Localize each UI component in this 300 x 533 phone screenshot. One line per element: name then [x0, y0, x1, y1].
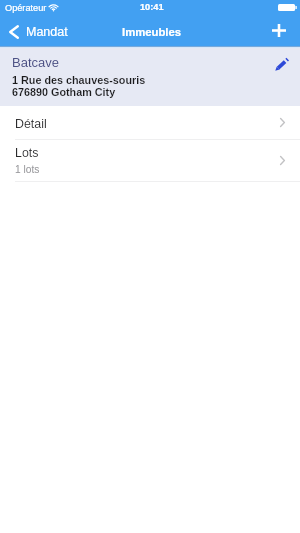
staticText: Batcave	[12, 55, 59, 70]
staticText: 10:41	[140, 2, 164, 12]
button[interactable]: Lots	[0, 140, 300, 182]
staticText: Immeubles	[122, 26, 182, 39]
button[interactable]: Batcave	[0, 48, 300, 106]
staticText: Mandat	[26, 25, 68, 39]
staticText: Lots	[15, 146, 39, 160]
button[interactable]: Ajouter	[266, 19, 292, 42]
button[interactable]: Modifier	[271, 54, 293, 75]
button[interactable]: Mandat	[0, 20, 78, 44]
button[interactable]: Détail	[0, 106, 300, 140]
staticText: Opérateur	[5, 3, 47, 13]
staticText: 676890 Gotham City	[12, 86, 116, 98]
staticText: Détail	[15, 117, 47, 131]
staticText: 1 lots	[15, 164, 40, 175]
staticText: 1 Rue des chauves-souris	[12, 74, 146, 86]
